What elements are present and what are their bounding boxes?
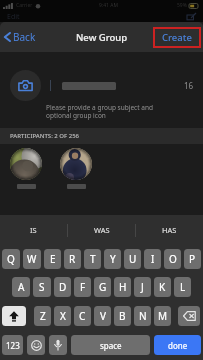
staticText: S [39, 280, 45, 294]
button[interactable]: Z [34, 306, 51, 326]
staticText: New Group [76, 31, 128, 44]
button[interactable]: Q [2, 249, 20, 269]
button[interactable]: C [74, 306, 91, 326]
button[interactable]: R [64, 249, 81, 269]
staticText: E [50, 252, 56, 266]
button[interactable]: Dictate [49, 335, 67, 355]
staticText: Please provide a group subject and optio… [46, 103, 195, 120]
button[interactable]: WAS [68, 215, 135, 245]
staticText: G [99, 280, 107, 294]
button[interactable]: H [114, 277, 131, 297]
button[interactable]: Numbers [2, 335, 23, 355]
staticText: V [100, 309, 106, 323]
button[interactable]: space [71, 335, 150, 355]
staticText: Back [13, 30, 36, 44]
button[interactable]: F [74, 277, 91, 297]
button[interactable]: I [144, 249, 161, 269]
staticText: Edit [7, 12, 20, 22]
button[interactable]: HAS [136, 215, 203, 245]
button[interactable]: Emoji [27, 335, 45, 355]
staticText: WAS [94, 225, 110, 235]
button[interactable]: D [54, 277, 71, 297]
staticText: K [159, 280, 166, 294]
staticText: I [151, 252, 155, 266]
staticText: H [119, 280, 127, 294]
button[interactable]: Backspace [178, 306, 200, 326]
staticText: A [18, 280, 25, 294]
button[interactable]: Shift [2, 306, 26, 326]
button[interactable]: W [23, 249, 41, 269]
button[interactable]: X [54, 306, 71, 326]
button[interactable]: S [33, 277, 51, 297]
button[interactable]: L [174, 277, 191, 297]
staticText: HAS [162, 225, 177, 235]
staticText: J [141, 280, 144, 294]
button[interactable]: Participant [10, 148, 42, 180]
staticText: done [168, 340, 188, 351]
staticText: U [129, 252, 137, 266]
button[interactable]: U [124, 249, 141, 269]
button[interactable]: A [12, 277, 30, 297]
staticText: P [189, 252, 196, 266]
staticText: N [139, 309, 147, 323]
button[interactable]: G [94, 277, 111, 297]
button[interactable]: Add group icon [10, 70, 41, 101]
button[interactable]: Y [104, 249, 121, 269]
staticText: 16 [184, 80, 194, 91]
button[interactable]: Create [153, 27, 201, 48]
button[interactable]: B [114, 306, 131, 326]
staticText: 123 [6, 340, 20, 351]
staticText: Create [162, 31, 192, 44]
staticText: PARTICIPANTS: 2 OF 256 [10, 132, 80, 140]
button[interactable]: T [84, 249, 101, 269]
staticText: L [180, 280, 186, 294]
staticText: C [79, 309, 86, 323]
staticText: IS [30, 225, 37, 235]
staticText: X [60, 309, 66, 323]
button[interactable]: Back [0, 22, 42, 52]
staticText: Carrier [16, 2, 33, 9]
button[interactable]: M [154, 306, 171, 326]
staticText: M [158, 309, 168, 323]
staticText: Q [7, 252, 15, 266]
staticText: B [119, 309, 126, 323]
staticText: Z [40, 309, 46, 323]
staticText: R [69, 252, 76, 266]
button[interactable]: IS [0, 215, 67, 245]
button[interactable] [50, 69, 184, 101]
staticText: T [90, 252, 96, 266]
button[interactable]: K [154, 277, 171, 297]
button[interactable]: N [134, 306, 151, 326]
staticText: Y [110, 252, 116, 266]
button[interactable]: P [184, 249, 201, 269]
staticText: F [80, 280, 86, 294]
button[interactable]: done [154, 335, 201, 355]
button[interactable]: O [164, 249, 181, 269]
staticText: W [27, 252, 37, 266]
button[interactable]: E [44, 249, 61, 269]
button[interactable]: V [94, 306, 111, 326]
staticText: 59% [177, 2, 187, 9]
button[interactable]: Participant [60, 148, 92, 180]
staticText: space [100, 340, 122, 351]
staticText: 9:41 AM [99, 2, 118, 9]
button[interactable]: J [134, 277, 151, 297]
staticText: O [169, 252, 177, 266]
staticText: D [59, 280, 67, 294]
